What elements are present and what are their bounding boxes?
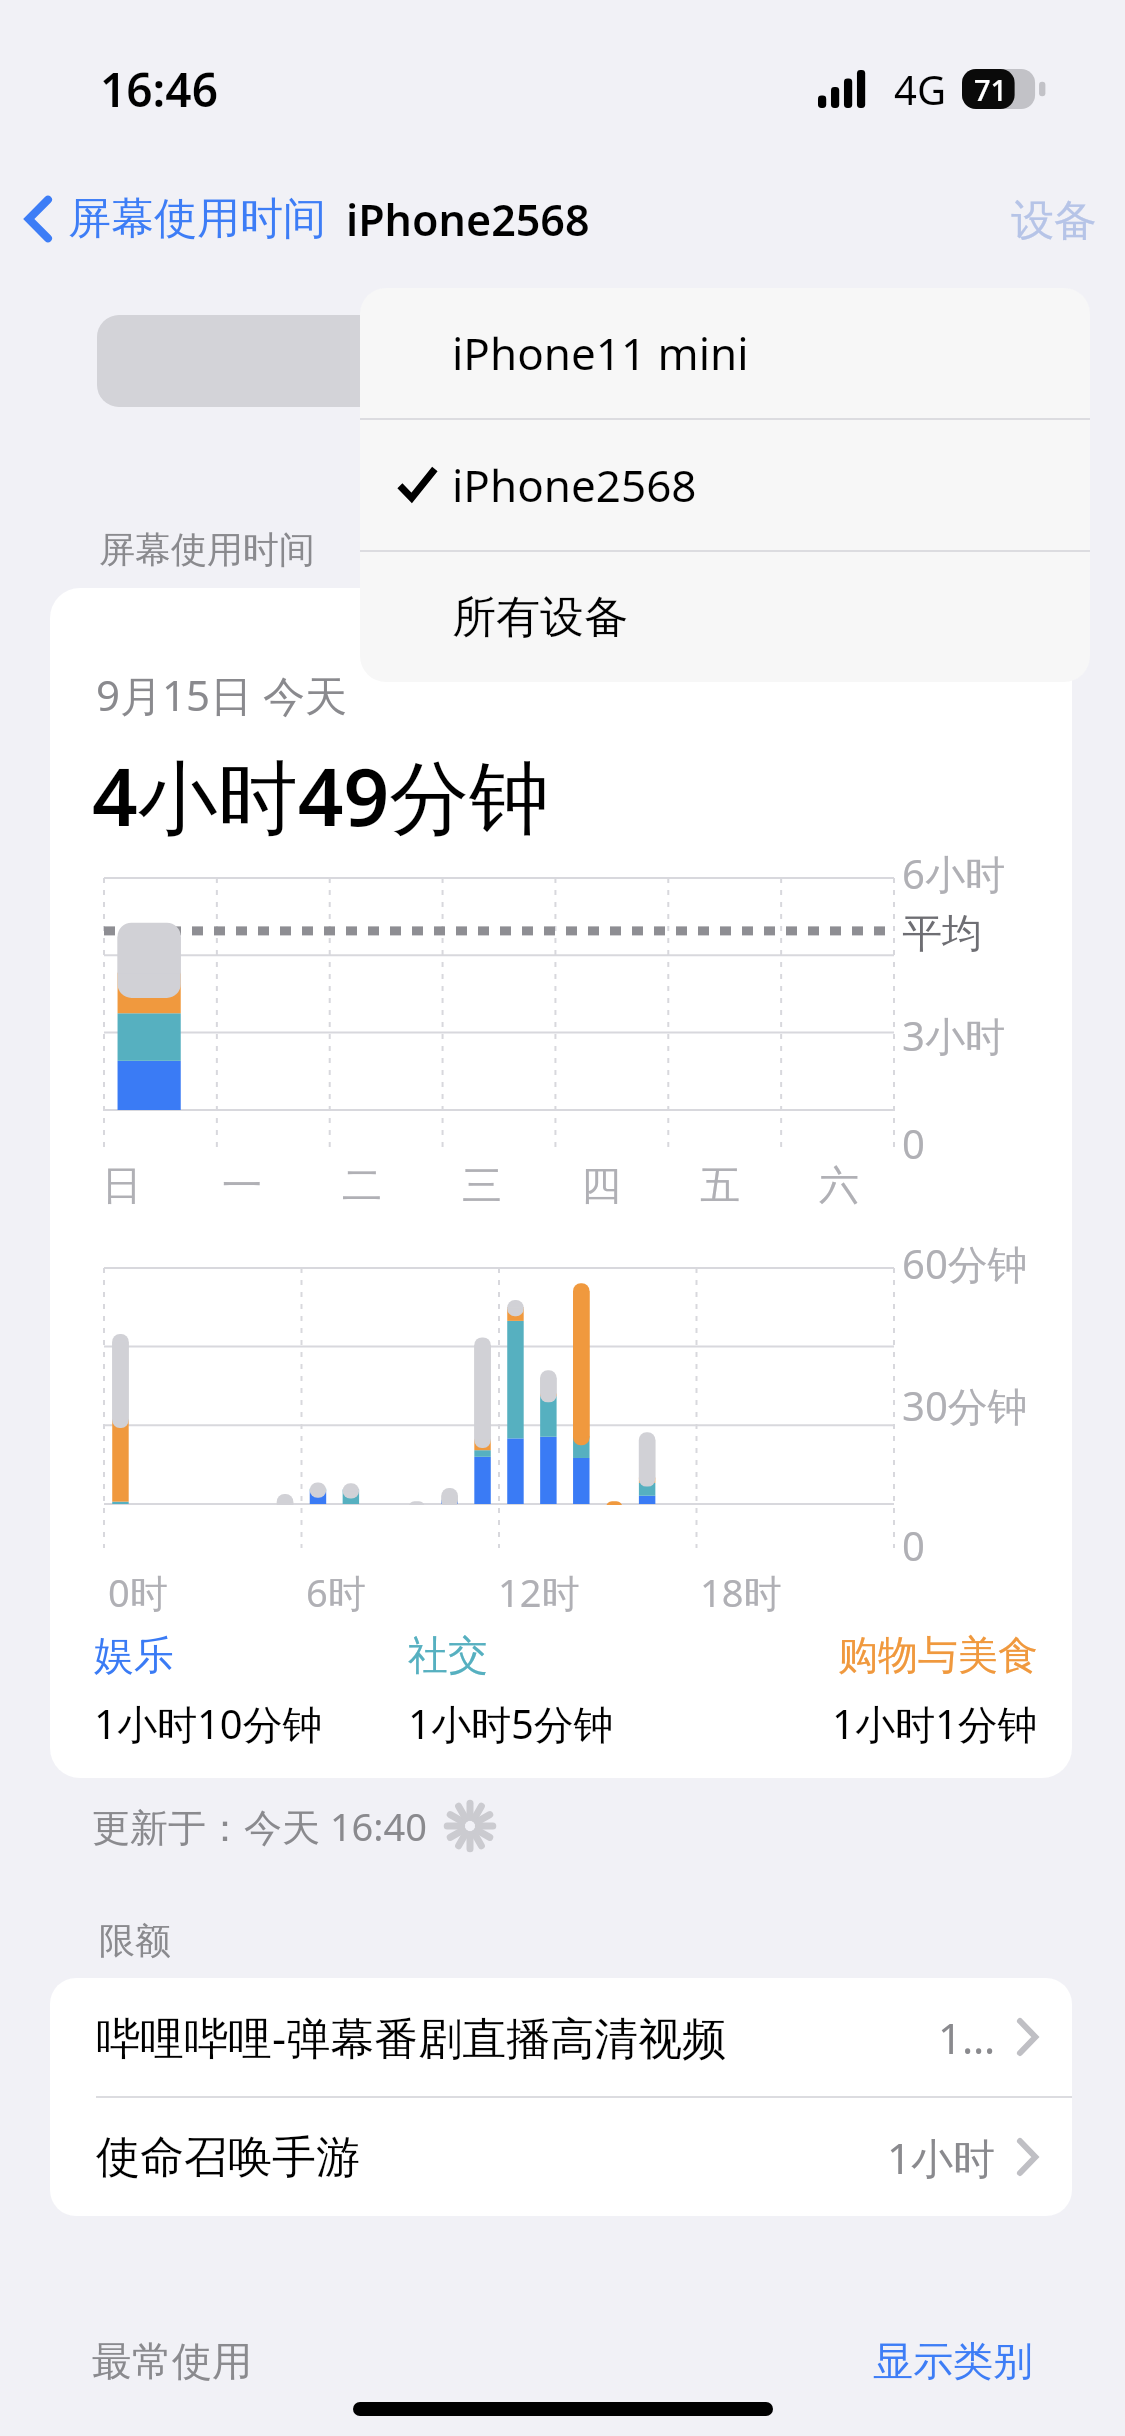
staticText: 所有设备: [452, 590, 628, 645]
staticText: 0时: [108, 1566, 168, 1618]
staticText: 设备: [1011, 194, 1097, 244]
staticText: 平均: [902, 908, 982, 958]
staticText: iPhone11 mini: [452, 323, 749, 383]
staticText: 1…: [938, 2009, 996, 2066]
staticText: 1小时: [887, 2129, 996, 2186]
staticText: 三: [462, 1160, 502, 1210]
staticText: 屏幕使用时间: [99, 527, 315, 572]
staticText: 二: [342, 1160, 382, 1210]
staticText: 71: [974, 70, 1008, 109]
button[interactable]: 哔哩哔哩-弹幕番剧直播高清视频: [50, 1978, 1072, 2096]
staticText: 1小时10分钟: [94, 1696, 323, 1751]
staticText: 1小时5分钟: [408, 1696, 614, 1751]
staticText: 六: [819, 1160, 859, 1210]
staticText: 娱乐: [94, 1630, 174, 1680]
staticText: 哔哩哔哩-弹幕番剧直播高清视频: [96, 2007, 727, 2067]
button[interactable]: iPhone11 mini: [360, 288, 1090, 418]
staticText: 60分钟: [902, 1236, 1028, 1291]
staticText: 12时: [498, 1566, 580, 1618]
staticText: 每周: [540, 336, 620, 386]
staticText: 日: [102, 1160, 142, 1210]
button[interactable]: 每周: [97, 315, 732, 407]
staticText: 社交: [408, 1630, 488, 1680]
staticText: 4G: [894, 62, 946, 116]
staticText: 五: [700, 1160, 740, 1210]
other: Back: [24, 196, 54, 242]
staticText: 屏幕使用时间: [68, 192, 326, 246]
staticText: 30分钟: [902, 1378, 1028, 1433]
staticText: iPhone2568: [346, 190, 590, 249]
staticText: 更新于：今天 16:40: [92, 1800, 428, 1852]
button[interactable]: 设备: [983, 182, 1125, 256]
staticText: 限额: [99, 1918, 171, 1963]
staticText: 一: [222, 1160, 262, 1210]
button[interactable]: Back: [0, 184, 330, 254]
button[interactable]: 显示类别: [873, 2336, 1033, 2386]
staticText: 3小时: [902, 1008, 1005, 1063]
staticText: 18时: [700, 1566, 782, 1618]
staticText: 0: [902, 1116, 925, 1170]
staticText: 6小时: [902, 846, 1005, 901]
button[interactable]: 所有设备: [360, 552, 1090, 682]
staticText: 购物与美食: [838, 1630, 1038, 1680]
staticText: 使命召唤手游: [96, 2130, 360, 2185]
button[interactable]: 使命召唤手游: [50, 2098, 1072, 2216]
button[interactable]: iPhone2568: [360, 420, 1090, 550]
staticText: 最常使用: [92, 2336, 252, 2386]
staticText: 16:46: [100, 58, 218, 121]
staticText: 显示类别: [873, 2336, 1033, 2386]
staticText: 1小时1分钟: [832, 1696, 1038, 1751]
staticText: 4小时49分钟: [92, 740, 550, 849]
staticText: 9月15日 今天: [96, 666, 347, 723]
staticText: 0: [902, 1518, 925, 1572]
staticText: 四: [581, 1160, 621, 1210]
staticText: iPhone2568: [452, 455, 697, 515]
staticText: 6时: [306, 1566, 366, 1618]
